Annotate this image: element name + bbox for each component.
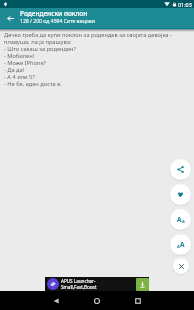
button[interactable]: Back (0, 8, 20, 28)
staticText: Дечко треба да купи поклон за родендев з… (4, 31, 191, 88)
staticText: A (180, 240, 185, 249)
button[interactable]: Favorite (170, 184, 191, 205)
staticText: a (182, 218, 185, 224)
button[interactable]: APUS Launcher- (45, 277, 149, 291)
button[interactable]: Home (90, 294, 104, 308)
staticText: 01:03 (178, 1, 192, 8)
button[interactable]: Recent apps (131, 294, 145, 308)
button[interactable]: Share (170, 159, 191, 180)
staticText: 128 / 200 од 4594 Сите вицови (20, 18, 95, 25)
staticText: a (177, 243, 180, 249)
staticText: A (177, 215, 182, 224)
button[interactable]: Install (136, 278, 149, 291)
staticText: Small,Fast,Boost (61, 284, 97, 290)
button[interactable]: Increase font size (170, 209, 191, 230)
button[interactable]: Back (49, 294, 63, 308)
staticText: Роденденски поклон (20, 9, 88, 18)
button[interactable]: Decrease font size (170, 234, 191, 255)
staticText: APUS Launcher- (61, 278, 96, 284)
button[interactable]: Close (173, 258, 189, 274)
